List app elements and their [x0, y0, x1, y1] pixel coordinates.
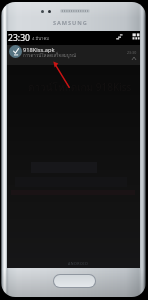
staticText: การดาวน์โหลดเสร็จสมบูรณ์: [23, 52, 76, 59]
button[interactable]: 918Kiss.apk: [7, 45, 140, 65]
staticText: 918Kiss.apk: [23, 46, 55, 54]
staticText: SAMSUNG: [53, 19, 88, 27]
staticText: ดาวน์โหลดเกม 918Kiss: [28, 80, 132, 96]
staticText: 23:30: [8, 32, 30, 44]
staticText: 4 มีนาคม: [32, 35, 50, 42]
staticText: ANDROID: [68, 261, 89, 266]
button[interactable]: Home: [53, 274, 96, 288]
staticText: 23:30: [127, 50, 137, 55]
